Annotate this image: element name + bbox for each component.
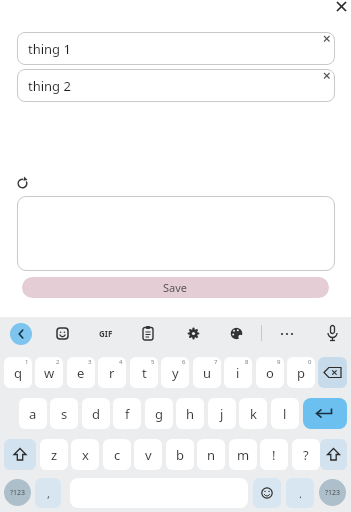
button[interactable] xyxy=(320,439,347,470)
staticText: 8 xyxy=(245,358,249,366)
button[interactable]: r xyxy=(98,357,126,388)
button[interactable]: thing 2 xyxy=(17,69,335,102)
button[interactable] xyxy=(141,325,155,342)
button[interactable]: f xyxy=(113,398,141,429)
staticText: p xyxy=(297,364,305,382)
button[interactable]: n xyxy=(197,439,225,470)
button[interactable]: u xyxy=(193,357,221,388)
button[interactable] xyxy=(186,326,201,341)
button[interactable] xyxy=(303,398,347,429)
button[interactable] xyxy=(325,324,340,343)
button[interactable]: m xyxy=(229,439,257,470)
button[interactable]: i xyxy=(224,357,252,388)
staticText: y xyxy=(172,364,179,382)
button[interactable]: g xyxy=(145,398,173,429)
button[interactable]: ? xyxy=(292,439,320,470)
button[interactable]: b xyxy=(166,439,194,470)
button[interactable]: w xyxy=(35,357,63,388)
button[interactable]: p xyxy=(287,357,315,388)
staticText: 5 xyxy=(151,358,155,366)
button[interactable] xyxy=(229,326,244,341)
button[interactable]: ?123 xyxy=(319,479,346,506)
staticText: g xyxy=(155,405,163,423)
button[interactable]: a xyxy=(19,398,47,429)
button[interactable]: t xyxy=(130,357,158,388)
button[interactable]: l xyxy=(271,398,299,429)
staticText: r xyxy=(109,364,115,382)
staticText: i xyxy=(236,364,240,382)
button[interactable] xyxy=(278,327,296,340)
staticText: k xyxy=(250,405,257,423)
staticText: w xyxy=(44,364,55,382)
staticText: ?123 xyxy=(325,488,341,498)
staticText: ? xyxy=(303,446,309,464)
staticText: z xyxy=(51,446,58,464)
staticText: l xyxy=(283,405,287,423)
button[interactable]: e xyxy=(67,357,95,388)
staticText: ! xyxy=(272,446,276,464)
button[interactable]: k xyxy=(239,398,267,429)
staticText: j xyxy=(220,405,224,423)
staticText: d xyxy=(92,405,100,423)
staticText: b xyxy=(176,446,184,464)
button[interactable]: o xyxy=(256,357,284,388)
staticText: m xyxy=(237,446,250,464)
staticText: 0 xyxy=(308,358,312,366)
staticText: Save xyxy=(163,280,188,295)
button[interactable] xyxy=(55,326,70,341)
button[interactable]: j xyxy=(208,398,236,429)
button[interactable]: , xyxy=(35,478,61,508)
button[interactable]: d xyxy=(82,398,110,429)
staticText: 2 xyxy=(56,358,60,366)
staticText: q xyxy=(14,364,22,382)
button[interactable]: v xyxy=(134,439,162,470)
button[interactable]: h xyxy=(176,398,204,429)
staticText: f xyxy=(125,405,130,423)
staticText: n xyxy=(207,446,216,464)
staticText: . xyxy=(299,486,302,501)
staticText: thing 2 xyxy=(28,77,71,95)
staticText: 1 xyxy=(25,358,29,366)
staticText: ?123 xyxy=(10,488,26,498)
button[interactable] xyxy=(10,323,32,345)
staticText: , xyxy=(47,486,50,501)
button[interactable] xyxy=(321,33,332,44)
staticText: v xyxy=(145,446,152,464)
button[interactable]: y xyxy=(161,357,189,388)
button[interactable]: Save xyxy=(22,277,329,298)
staticText: thing 1 xyxy=(28,40,71,58)
staticText: u xyxy=(203,364,212,382)
staticText: h xyxy=(186,405,195,423)
button[interactable]: s xyxy=(50,398,78,429)
button[interactable]: ?123 xyxy=(4,479,31,506)
staticText: 9 xyxy=(277,358,281,366)
staticText: 3 xyxy=(88,358,92,366)
staticText: s xyxy=(61,405,68,423)
button[interactable] xyxy=(15,176,30,191)
button[interactable] xyxy=(334,0,349,15)
staticText: t xyxy=(142,364,147,382)
staticText: c xyxy=(114,446,121,464)
button[interactable]: ! xyxy=(260,439,288,470)
button[interactable] xyxy=(4,439,36,470)
button[interactable]: z xyxy=(40,439,68,470)
staticText: a xyxy=(29,405,37,423)
staticText: x xyxy=(82,446,89,464)
button[interactable]: GIF xyxy=(96,327,115,340)
button[interactable]: x xyxy=(71,439,99,470)
button[interactable]: . xyxy=(286,478,314,508)
button[interactable] xyxy=(321,70,332,81)
button[interactable]: q xyxy=(4,357,32,388)
button[interactable]: thing 1 xyxy=(17,32,335,65)
staticText: e xyxy=(77,364,85,382)
staticText: 6 xyxy=(182,358,186,366)
staticText: 4 xyxy=(119,358,123,366)
button[interactable] xyxy=(318,357,347,388)
staticText: o xyxy=(266,364,274,382)
staticText: GIF xyxy=(99,328,113,339)
button[interactable]: c xyxy=(103,439,131,470)
button[interactable] xyxy=(253,478,281,508)
staticText: 7 xyxy=(214,358,218,366)
